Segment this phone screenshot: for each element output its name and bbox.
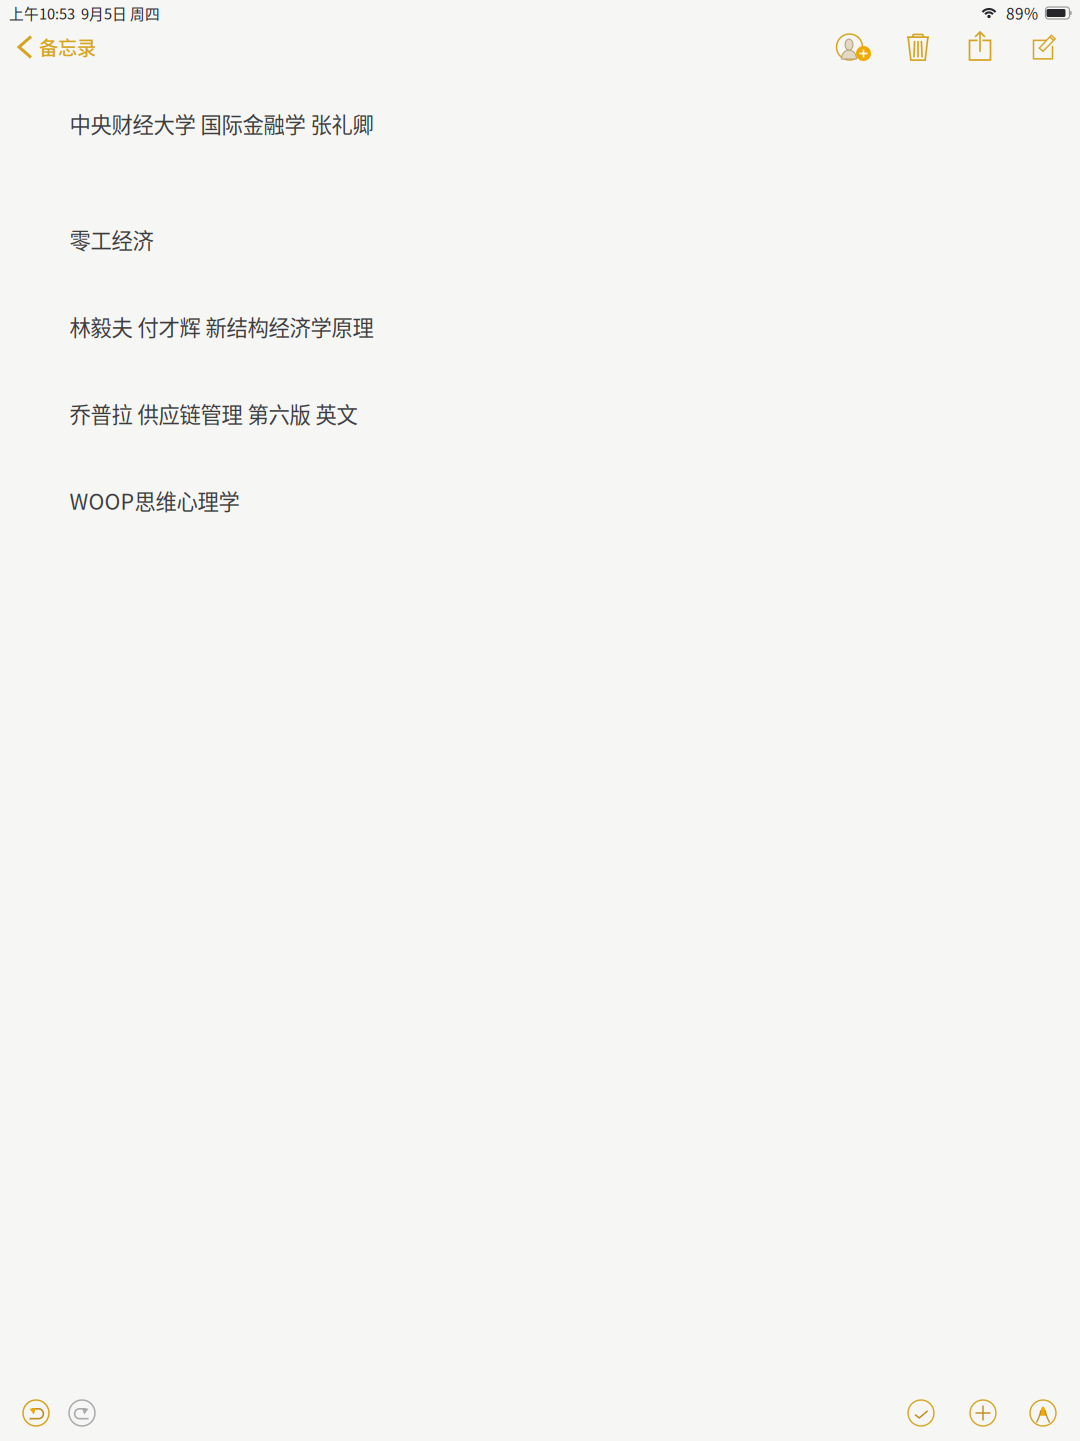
staticText: 备忘录	[39, 33, 96, 61]
staticText: 林毅夫 付才辉 新结构经济学原理	[69, 311, 373, 342]
staticText: 零工经济	[69, 224, 153, 255]
button[interactable]: 备忘录	[0, 23, 130, 71]
staticText: 上午10:53 9月5日 周四	[9, 2, 160, 24]
button[interactable]: Undo	[19, 1396, 53, 1430]
staticText: 89%	[1006, 2, 1038, 24]
button[interactable]: Redo	[65, 1396, 99, 1430]
button[interactable]: Markup	[1026, 1396, 1060, 1430]
button[interactable]: Add People	[832, 26, 876, 70]
button[interactable]: Add Attachment	[966, 1396, 1000, 1430]
button[interactable]: Delete	[896, 25, 940, 69]
staticText: WOOP思维心理学	[69, 485, 239, 516]
button[interactable]: Checklist	[904, 1396, 938, 1430]
staticText: 乔普拉 供应链管理 第六版 英文	[69, 398, 357, 429]
button[interactable]: New Note	[1022, 25, 1066, 69]
staticText: 中央财经大学 国际金融学 张礼卿	[69, 108, 373, 139]
button[interactable]: Share	[958, 24, 1002, 68]
